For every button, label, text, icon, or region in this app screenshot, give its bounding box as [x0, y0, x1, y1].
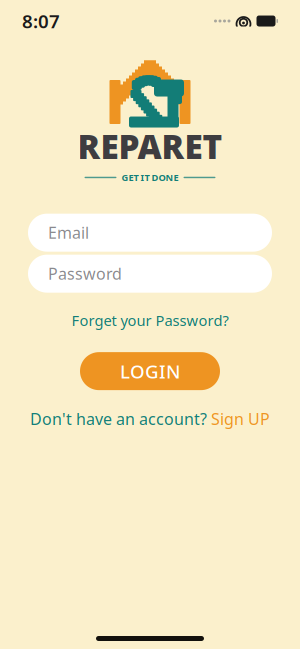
staticText: LOGIN — [120, 359, 180, 383]
button[interactable]: Don't have an account? — [24, 404, 276, 433]
staticText: Password — [48, 263, 122, 284]
button[interactable]: LOGIN — [80, 352, 220, 390]
button[interactable]: Password — [28, 255, 272, 293]
button[interactable]: Forget your Password? — [65, 307, 234, 334]
staticText: Don't have an account? — [30, 408, 207, 429]
staticText: 8:07 — [22, 9, 60, 33]
staticText: Email — [48, 222, 89, 243]
staticText: Sign UP — [211, 408, 270, 429]
staticText: GET IT DONE — [121, 171, 178, 184]
staticText: REPARET — [77, 124, 222, 168]
button[interactable]: Email — [28, 214, 272, 252]
staticText: Forget your Password? — [71, 311, 228, 330]
